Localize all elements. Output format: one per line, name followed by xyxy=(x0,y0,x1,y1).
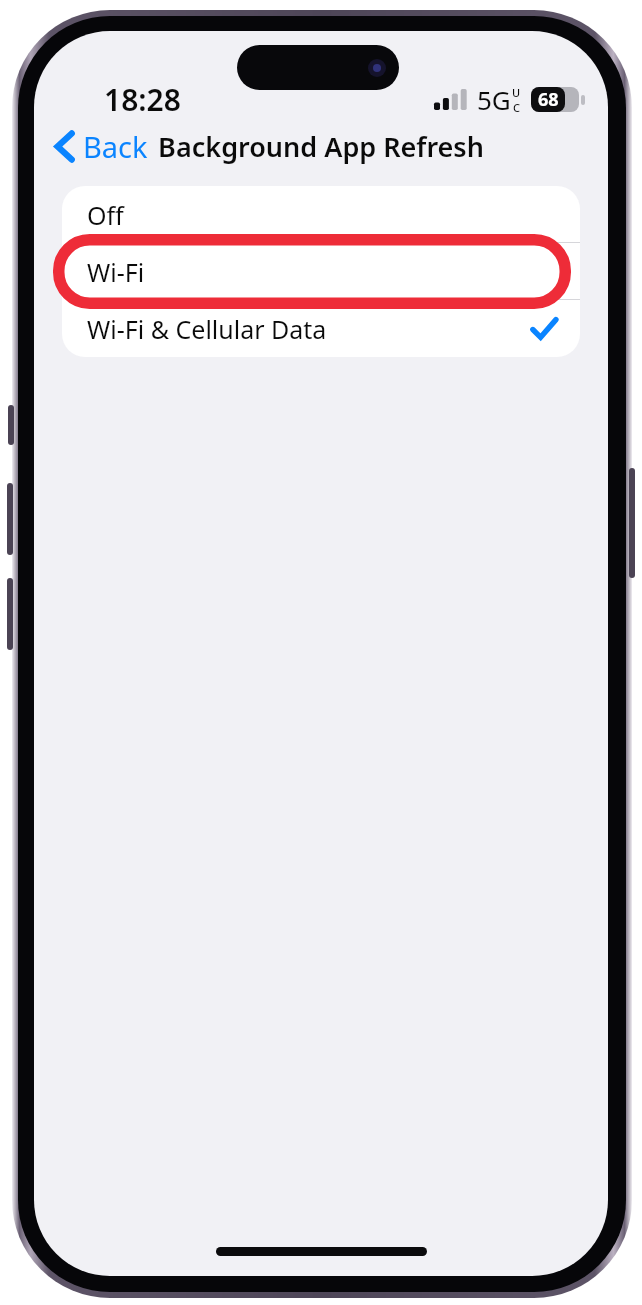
staticText: 5G xyxy=(477,82,511,117)
staticText: Back xyxy=(83,127,148,166)
staticText: U xyxy=(512,85,521,100)
button[interactable]: Wi-Fi & Cellular Data xyxy=(62,300,580,357)
staticText: 68 xyxy=(538,87,559,112)
other: Selected xyxy=(531,316,557,342)
staticText: Wi-Fi xyxy=(87,255,145,289)
staticText: C xyxy=(513,100,520,115)
staticText: Background App Refresh xyxy=(158,128,484,165)
button[interactable]: Back xyxy=(46,117,157,175)
staticText: Off xyxy=(87,198,124,232)
button[interactable]: Off xyxy=(62,186,580,243)
staticText: Wi-Fi & Cellular Data xyxy=(87,312,327,346)
staticText: 18:28 xyxy=(104,79,181,119)
button[interactable]: Wi-Fi xyxy=(62,243,580,300)
